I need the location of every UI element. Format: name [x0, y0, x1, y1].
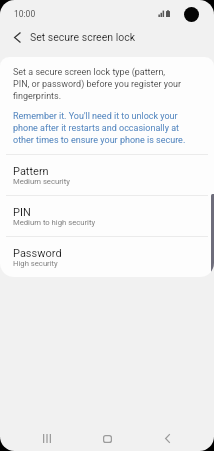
staticText: 10:00	[14, 9, 36, 19]
staticText: Set secure screen lock	[30, 31, 136, 44]
staticText: Pattern	[13, 165, 49, 178]
staticText: PIN	[13, 206, 31, 219]
button[interactable]: Password	[0, 237, 214, 277]
staticText: High security	[13, 260, 58, 268]
staticText: Password	[13, 247, 62, 260]
staticText: Medium to high security	[13, 219, 96, 227]
button[interactable]: Home	[87, 418, 127, 451]
staticText: Medium security	[13, 178, 70, 186]
button[interactable]: Recent apps	[27, 418, 67, 451]
button[interactable]: PIN	[0, 196, 214, 237]
button[interactable]: Back	[147, 418, 187, 451]
button[interactable]: Navigate up	[4, 26, 29, 49]
staticText: Set a secure screen lock type (pattern, …	[13, 66, 182, 102]
button[interactable]: Pattern	[0, 155, 214, 196]
staticText: Remember it. You'll need it to unlock yo…	[13, 109, 191, 145]
